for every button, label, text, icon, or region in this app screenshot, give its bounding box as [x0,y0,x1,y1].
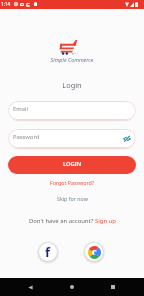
button[interactable]: Sign in with Facebook [37,241,59,263]
button[interactable]: Forgot Password? [50,179,95,186]
staticText: 1:14 [1,1,11,7]
button[interactable]: Back [0,278,48,296]
button[interactable]: Sign up [95,217,116,225]
staticText: Don't have an account? [29,217,95,225]
button[interactable]: LOGIN [8,156,136,174]
staticText: Password [13,133,40,141]
button[interactable]: Recent apps [96,278,144,296]
staticText: LOGIN [63,160,82,168]
staticText: Login [0,80,144,90]
button[interactable]: Sign in with Google [83,241,105,263]
button[interactable]: Home [55,278,89,296]
staticText: Simple Commerce [0,56,144,63]
button[interactable]: Toggle password visibility [123,135,131,142]
staticText: G [26,1,30,8]
staticText: Email [13,105,28,113]
button[interactable]: Password [8,129,136,148]
button[interactable]: Email [8,101,136,120]
button[interactable]: Skip for now [57,195,88,202]
staticText: f [45,243,51,261]
